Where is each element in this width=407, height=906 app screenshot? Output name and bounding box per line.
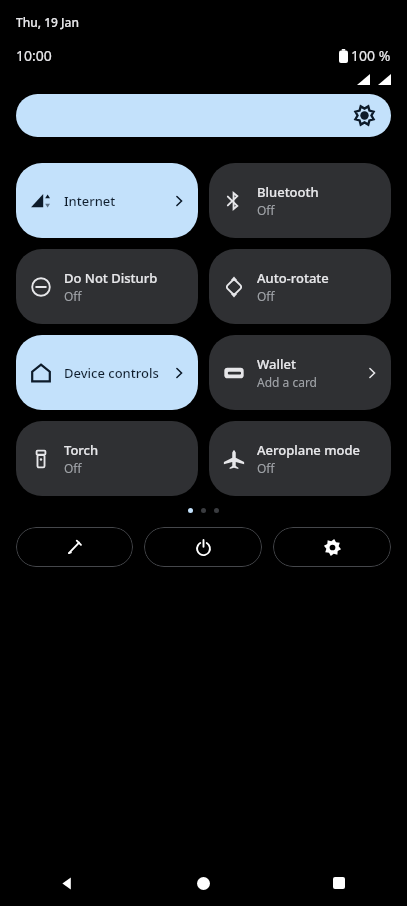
staticText: Bluetooth — [257, 183, 319, 201]
button[interactable]: Wallet — [209, 335, 391, 410]
staticText: Off — [64, 460, 82, 476]
button[interactable]: Settings — [273, 527, 391, 567]
button[interactable]: Home — [135, 860, 271, 906]
button[interactable]: Edit — [16, 527, 133, 567]
staticText: Thu, 19 Jan — [16, 14, 79, 30]
button[interactable]: Device controls — [16, 335, 198, 410]
button[interactable]: Power — [144, 527, 262, 567]
staticText: Off — [257, 288, 275, 304]
staticText: Do Not Disturb — [64, 269, 158, 287]
staticText: Aeroplane mode — [257, 441, 360, 459]
staticText: Off — [257, 202, 275, 218]
staticText: 10:00 — [16, 46, 52, 65]
button[interactable]: Back — [0, 860, 135, 906]
staticText: Wallet — [257, 355, 296, 373]
staticText: 100 % — [351, 46, 391, 65]
button[interactable]: Bluetooth — [209, 163, 391, 238]
button[interactable]: Brightness — [16, 94, 391, 137]
staticText: Off — [64, 288, 82, 304]
button[interactable]: Do Not Disturb — [16, 249, 198, 324]
staticText: Auto-rotate — [257, 269, 329, 287]
other: Brightness — [354, 105, 375, 126]
staticText: Off — [257, 460, 275, 476]
button[interactable]: Aeroplane mode — [209, 421, 391, 496]
staticText: Device controls — [64, 364, 159, 382]
button[interactable]: Auto-rotate — [209, 249, 391, 324]
button[interactable]: Internet — [16, 163, 198, 238]
staticText: Add a card — [257, 374, 317, 390]
button[interactable]: Recents — [271, 860, 407, 906]
staticText: Torch — [64, 441, 99, 459]
staticText: Internet — [64, 192, 116, 210]
button[interactable]: Torch — [16, 421, 198, 496]
